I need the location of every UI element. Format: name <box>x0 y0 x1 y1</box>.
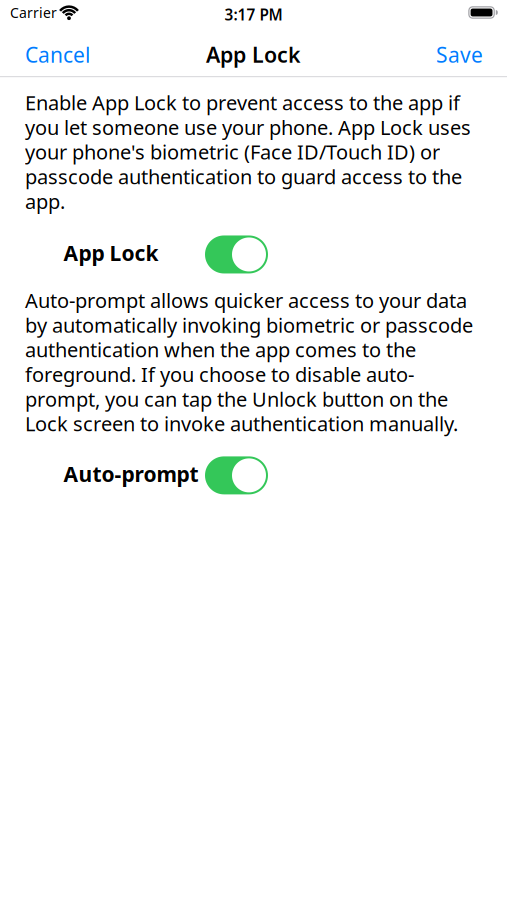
staticText: Auto-prompt allows quicker access to you… <box>25 288 473 436</box>
button[interactable]: App Lock <box>205 235 268 273</box>
button[interactable]: Save <box>436 40 483 69</box>
staticText: Carrier <box>10 3 57 22</box>
staticText: Cancel <box>25 40 90 69</box>
staticText: 3:17 PM <box>224 4 282 25</box>
staticText: Save <box>436 40 483 69</box>
button[interactable]: Auto-prompt <box>205 456 268 494</box>
staticText: App Lock <box>206 40 301 69</box>
staticText: Auto-prompt <box>63 460 198 488</box>
staticText: App Lock <box>63 239 158 267</box>
button[interactable]: Cancel <box>25 40 90 69</box>
staticText: Enable App Lock to prevent access to the… <box>25 90 471 213</box>
